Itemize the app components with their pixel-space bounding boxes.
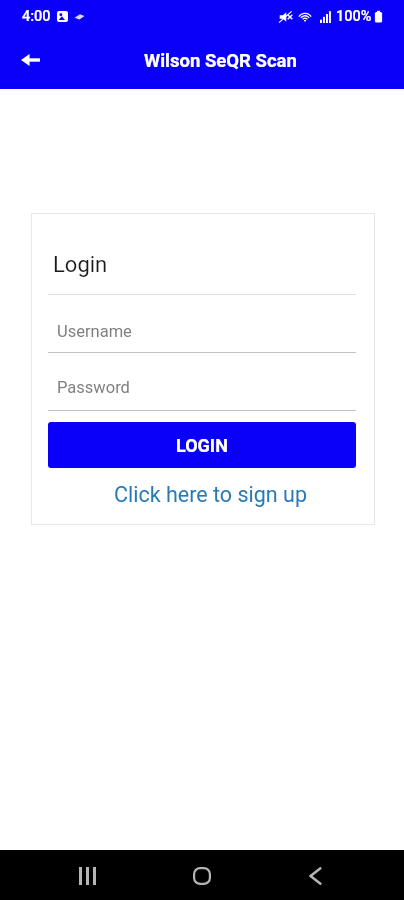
staticText: LOGIN (176, 435, 228, 456)
staticText: Wilson SeQR Scan (144, 50, 297, 72)
button[interactable]: LOGIN (48, 422, 356, 468)
staticText: 4:00 (22, 8, 51, 25)
button[interactable]: Recent apps (63, 852, 111, 900)
staticText: Login (53, 252, 108, 278)
button[interactable]: Back (10, 40, 50, 80)
button[interactable]: Back (291, 852, 339, 900)
staticText: Click here to sign up (114, 482, 307, 507)
button[interactable]: Click here to sign up (38, 477, 382, 511)
button[interactable]: Home (178, 852, 226, 900)
staticText: Password (57, 378, 130, 397)
staticText: 100% (336, 8, 372, 25)
staticText: Username (57, 322, 132, 341)
